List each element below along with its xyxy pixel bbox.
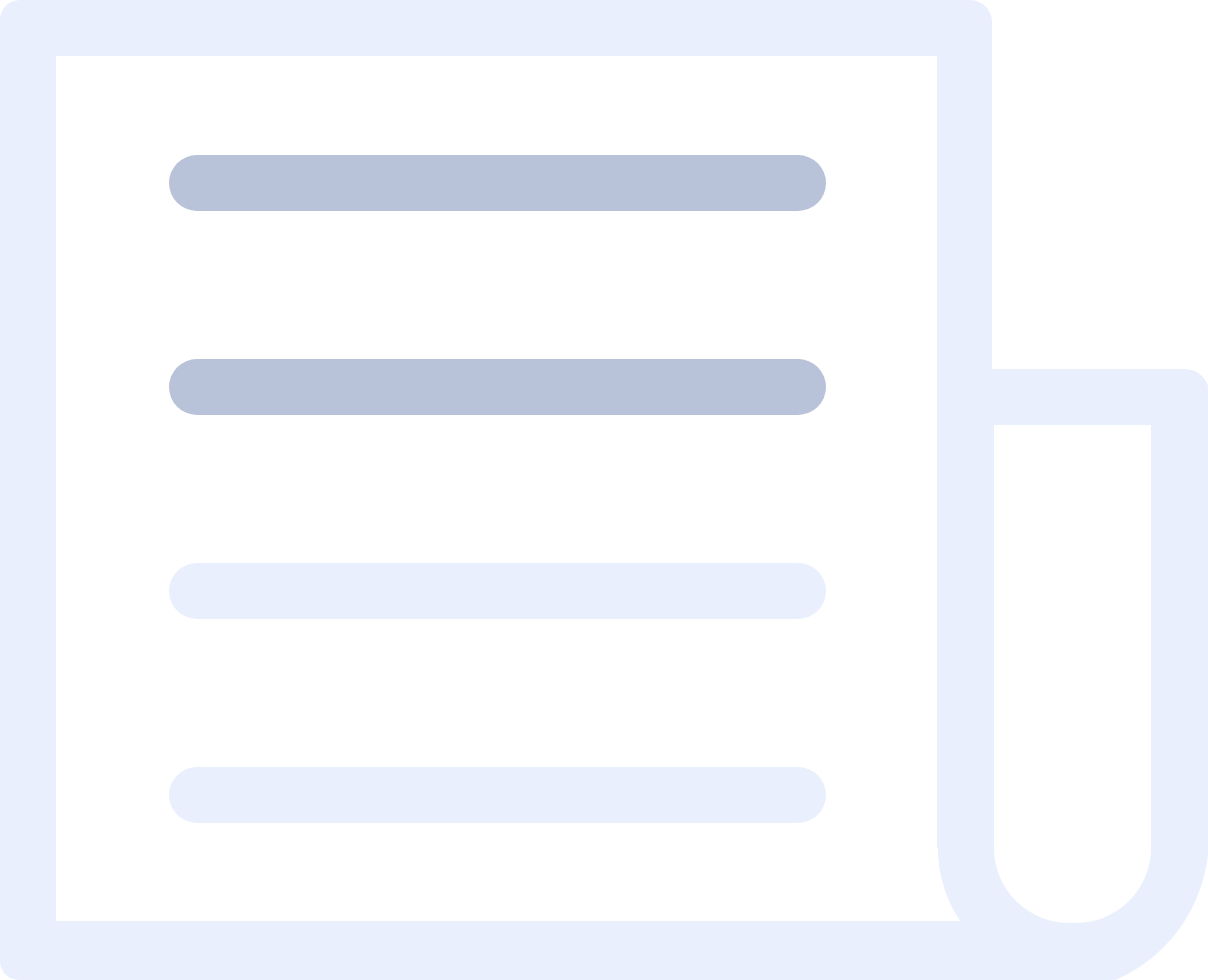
button[interactable]: Newspaper xyxy=(0,0,1208,980)
